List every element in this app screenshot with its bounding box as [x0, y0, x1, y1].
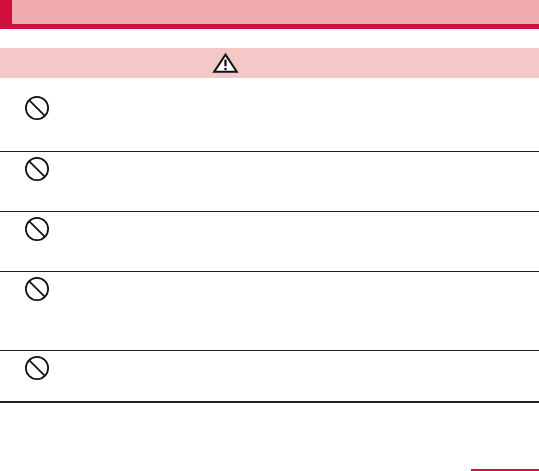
- button[interactable]: Blocked item 5: [0, 351, 539, 401]
- button[interactable]: Blocked item 4: [0, 272, 539, 350]
- button[interactable]: Warning banner: [0, 48, 539, 78]
- button[interactable]: Blocked item 1: [0, 90, 539, 151]
- button[interactable]: App bar: [0, 0, 539, 29]
- button[interactable]: Blocked item 2: [0, 152, 539, 211]
- button[interactable]: Blocked item 3: [0, 212, 539, 271]
